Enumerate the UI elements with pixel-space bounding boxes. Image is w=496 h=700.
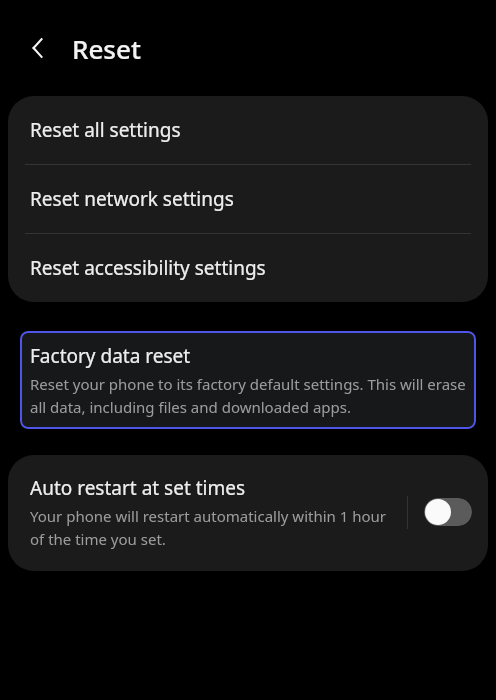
staticText: Reset all settings (30, 117, 181, 143)
button[interactable]: Reset network settings (8, 165, 488, 233)
button[interactable]: Reset all settings (8, 96, 488, 164)
staticText: Reset your phone to its factory default … (30, 374, 466, 417)
button[interactable]: Reset accessibility settings (8, 234, 488, 302)
button[interactable]: Auto restart at set times toggle (424, 498, 472, 526)
staticText: Reset network settings (30, 186, 234, 212)
button[interactable]: Factory data reset (20, 331, 476, 429)
button[interactable]: Auto restart at set times (8, 455, 488, 571)
staticText: Your phone will restart automatically wi… (30, 506, 399, 549)
staticText: Reset (72, 31, 141, 66)
button[interactable]: Back (16, 26, 60, 70)
staticText: Factory data reset (30, 343, 191, 369)
staticText: Auto restart at set times (30, 475, 246, 501)
staticText: Reset accessibility settings (30, 255, 266, 281)
